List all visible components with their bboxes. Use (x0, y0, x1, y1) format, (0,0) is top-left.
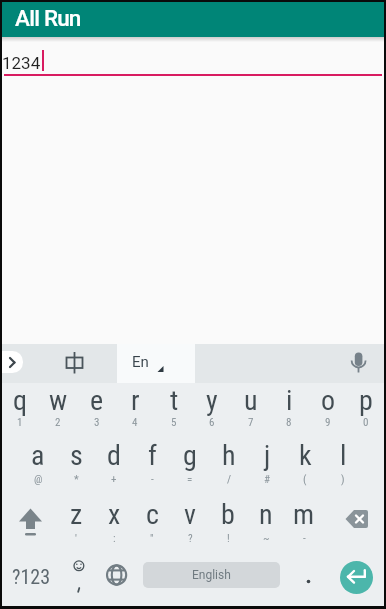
staticText: m (293, 498, 315, 531)
button[interactable]: ?123 (5, 556, 57, 596)
button[interactable] (247, 495, 285, 551)
button[interactable] (58, 551, 100, 606)
staticText: t (170, 384, 179, 417)
button[interactable] (334, 495, 382, 551)
button[interactable] (171, 495, 209, 551)
button[interactable] (2, 351, 23, 373)
staticText: n (259, 498, 273, 531)
staticText: ~ (263, 532, 270, 545)
staticText: u (244, 384, 258, 417)
button[interactable] (286, 439, 324, 495)
button[interactable] (270, 383, 308, 439)
button[interactable] (340, 561, 373, 594)
button[interactable] (171, 439, 209, 495)
staticText: 3 (94, 416, 100, 429)
staticText: y (206, 384, 218, 417)
button[interactable] (290, 551, 330, 606)
staticText: + (111, 473, 117, 486)
staticText: o (321, 384, 336, 417)
staticText: = (187, 473, 193, 486)
staticText: English (192, 568, 231, 582)
staticText: - (303, 532, 306, 545)
staticText: 1 (17, 416, 23, 429)
button[interactable] (95, 495, 133, 551)
staticText: k (299, 439, 312, 472)
button[interactable] (133, 495, 171, 551)
staticText: All Run (15, 5, 81, 31)
staticText: z (70, 498, 83, 531)
staticText: j (264, 439, 271, 472)
button[interactable] (96, 551, 138, 606)
button[interactable] (95, 439, 133, 495)
button[interactable] (30, 344, 117, 383)
staticText: c (146, 498, 159, 531)
button[interactable] (324, 439, 362, 495)
button[interactable] (340, 344, 384, 383)
staticText: 0 (363, 416, 369, 429)
staticText: " (150, 532, 154, 545)
staticText: i (286, 384, 293, 417)
staticText: g (183, 439, 197, 472)
staticText: ? (188, 532, 193, 545)
button[interactable] (8, 495, 56, 551)
button[interactable] (116, 383, 154, 439)
button[interactable] (78, 383, 116, 439)
staticText: @ (34, 473, 43, 486)
staticText: f (148, 439, 157, 472)
button[interactable] (19, 439, 57, 495)
button[interactable] (209, 495, 247, 551)
staticText: - (151, 473, 154, 486)
staticText: ) (341, 473, 345, 486)
staticText: 2 (55, 416, 61, 429)
button[interactable] (285, 495, 323, 551)
staticText: e (90, 384, 104, 417)
staticText: 6 (209, 416, 215, 429)
staticText: b (221, 498, 235, 531)
staticText: 8 (286, 416, 292, 429)
button[interactable] (39, 383, 77, 439)
button[interactable] (232, 383, 270, 439)
button[interactable] (1, 383, 39, 439)
staticText: ?123 (12, 565, 51, 588)
button[interactable]: English (143, 562, 280, 588)
button[interactable] (193, 383, 231, 439)
staticText: 4 (132, 416, 138, 429)
button[interactable] (2, 42, 384, 78)
staticText: : (113, 532, 116, 545)
staticText: r (131, 384, 140, 417)
staticText: x (108, 498, 121, 531)
button[interactable] (347, 383, 385, 439)
staticText: * (74, 473, 79, 486)
button[interactable] (57, 439, 95, 495)
staticText: 7 (248, 416, 254, 429)
button[interactable] (210, 439, 248, 495)
staticText: q (13, 384, 28, 417)
button[interactable] (117, 344, 195, 383)
staticText: w (49, 384, 68, 417)
button[interactable] (155, 383, 193, 439)
staticText: h (222, 439, 236, 472)
button[interactable] (133, 439, 171, 495)
staticText: En (132, 353, 149, 371)
staticText: ! (227, 532, 230, 545)
staticText: 5 (171, 416, 177, 429)
staticText: 9 (325, 416, 331, 429)
staticText: 1234 (2, 53, 41, 73)
staticText: ' (75, 532, 77, 545)
button[interactable] (57, 495, 95, 551)
staticText: # (264, 473, 271, 486)
button[interactable] (309, 383, 347, 439)
staticText: p (359, 384, 373, 417)
staticText: a (31, 439, 45, 472)
staticText: ( (303, 473, 307, 486)
staticText: v (184, 498, 196, 531)
staticText: d (107, 439, 121, 472)
staticText: s (70, 439, 83, 472)
staticText: l (340, 439, 347, 472)
button[interactable] (248, 439, 286, 495)
staticText: / (227, 473, 232, 486)
